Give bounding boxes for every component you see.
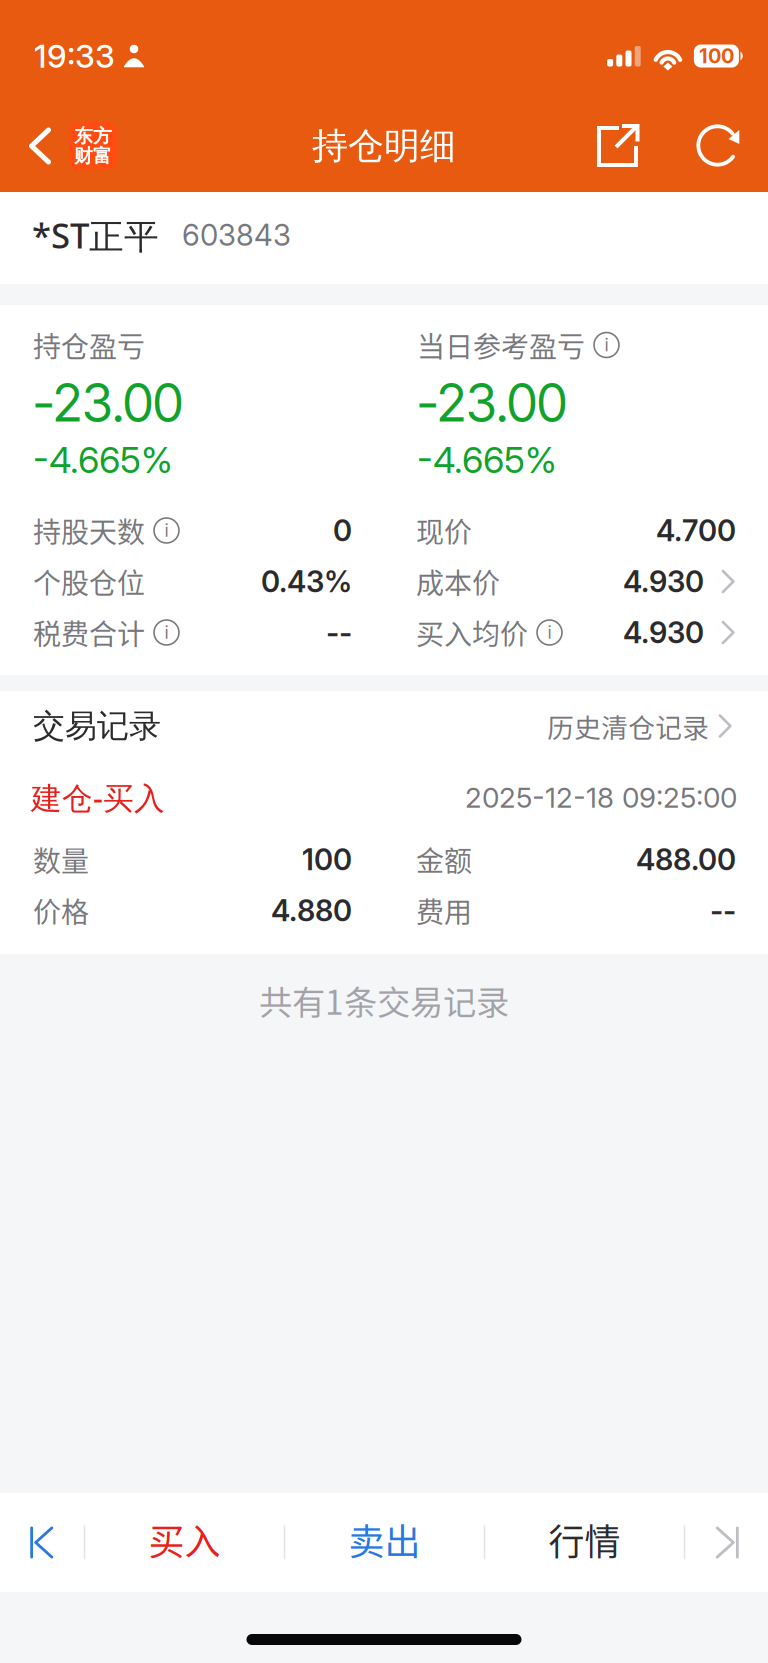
staticText: 488.00 (636, 842, 736, 877)
staticText: 财富 (74, 144, 112, 168)
button[interactable]: Back (0, 100, 131, 192)
staticText: *ST正平 (32, 211, 159, 259)
staticText: 个股仓位 (33, 561, 145, 602)
staticText: 2025-12-18 09:25:00 (465, 781, 737, 814)
staticText: 603843 (182, 217, 291, 253)
staticText: i (164, 622, 168, 643)
staticText: 4.700 (656, 513, 736, 548)
staticText: -4.665% (417, 438, 557, 482)
button[interactable]: First page (0, 1493, 84, 1592)
staticText: 4.930 (623, 615, 704, 650)
staticText: i (547, 622, 551, 643)
staticText: 成本价 (416, 561, 500, 602)
staticText: 0 (333, 513, 352, 548)
staticText: 100 (302, 842, 352, 877)
staticText: 共有1条交易记录 (259, 976, 509, 1024)
staticText: 历史清仓记录 (547, 707, 709, 745)
staticText: 当日参考盈亏 (417, 325, 585, 365)
staticText: 建仓-买入 (31, 777, 165, 818)
button[interactable]: 行情 (485, 1493, 684, 1592)
staticText: 持股天数 (33, 510, 145, 551)
staticText: 4.930 (623, 564, 704, 599)
staticText: i (164, 520, 168, 541)
staticText: 金额 (416, 839, 472, 880)
staticText: 买入 (148, 1513, 220, 1565)
staticText: 持仓明细 (312, 123, 456, 169)
button[interactable]: Refresh (678, 100, 760, 192)
staticText: -- (710, 893, 736, 928)
button[interactable]: 历史清仓记录 (547, 697, 733, 755)
button[interactable]: Last page (685, 1493, 768, 1592)
button[interactable]: 买入 (85, 1493, 284, 1592)
staticText: 东方 (74, 124, 112, 148)
staticText: i (604, 334, 608, 355)
staticText: 税费合计 (33, 612, 145, 653)
staticText: 4.880 (271, 893, 352, 928)
staticText: 现价 (416, 510, 472, 551)
staticText: 100 (699, 44, 734, 68)
staticText: 价格 (33, 890, 89, 931)
staticText: 持仓盈亏 (33, 325, 145, 365)
staticText: -23.00 (417, 371, 567, 434)
staticText: -- (326, 615, 352, 650)
staticText: 行情 (548, 1513, 620, 1565)
staticText: -23.00 (33, 371, 183, 434)
staticText: 买入均价 (416, 612, 528, 653)
staticText: 交易记录 (33, 706, 161, 746)
staticText: -4.665% (33, 438, 173, 482)
button[interactable]: Share (558, 100, 678, 192)
staticText: 19:33 (34, 37, 115, 75)
staticText: 卖出 (348, 1513, 420, 1565)
staticText: 费用 (416, 890, 472, 931)
button[interactable]: 卖出 (285, 1493, 484, 1592)
staticText: 0.43% (261, 564, 352, 599)
staticText: 数量 (33, 839, 89, 880)
